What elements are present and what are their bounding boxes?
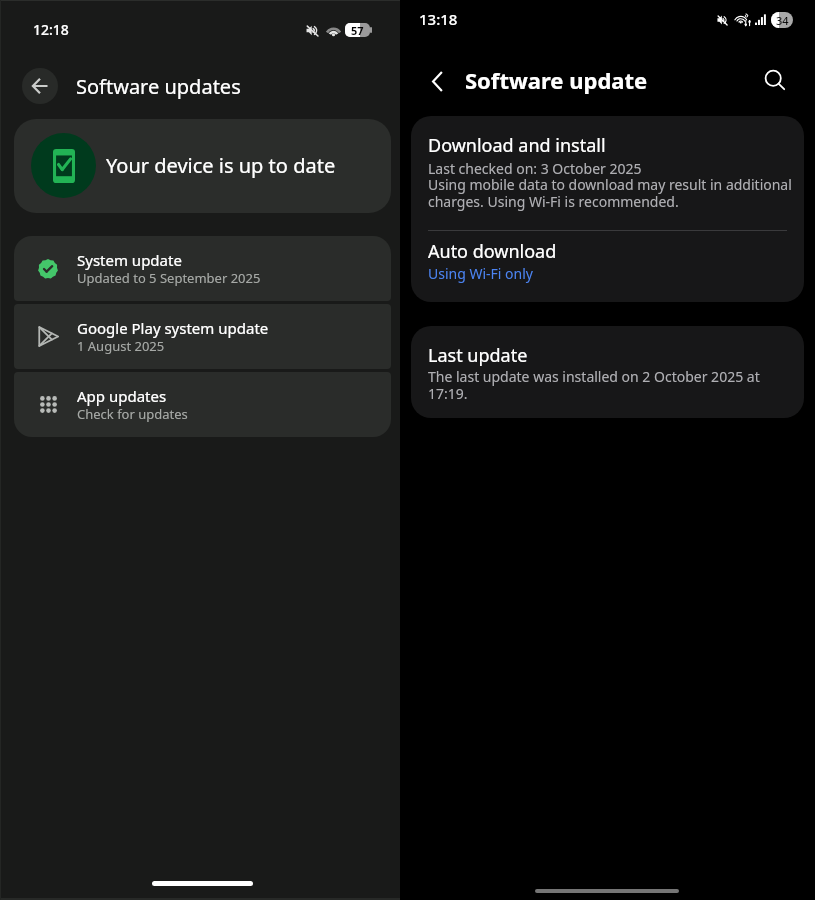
staticText: Updated to 5 September 2025	[77, 269, 261, 287]
staticText: 1 August 2025	[77, 337, 165, 355]
staticText: 57	[351, 23, 364, 37]
staticText: 34	[776, 13, 789, 28]
button[interactable]: Download and install	[411, 116, 804, 302]
staticText: 12:18	[33, 20, 69, 39]
staticText: The last update was installed on 2 Octob…	[428, 367, 768, 403]
staticText: Last update	[428, 343, 528, 368]
staticText: App updates	[77, 386, 167, 406]
staticText: Google Play system update	[77, 318, 269, 338]
staticText: 13:18	[419, 9, 458, 29]
button[interactable]: Google Play system update	[14, 304, 391, 369]
staticText: Download and install	[428, 133, 606, 158]
button[interactable]: Your device is up to date	[14, 119, 391, 213]
staticText: Software updates	[76, 73, 241, 100]
button[interactable]: System update	[14, 236, 391, 301]
staticText: Software update	[465, 65, 648, 95]
button[interactable]: Search	[758, 63, 790, 95]
staticText: Your device is up to date	[106, 152, 336, 179]
button[interactable]: Back	[420, 64, 454, 98]
staticText: Auto download	[428, 239, 557, 264]
staticText: Using Wi-Fi only	[428, 264, 533, 283]
button[interactable]: Last update	[411, 326, 804, 418]
staticText: Check for updates	[77, 405, 188, 423]
staticText: Using mobile data to download may result…	[428, 175, 794, 211]
staticText: System update	[77, 250, 182, 270]
button[interactable]: Back	[22, 68, 58, 104]
button[interactable]: App updates	[14, 372, 391, 437]
staticText: Last checked on: 3 October 2025	[428, 159, 642, 178]
